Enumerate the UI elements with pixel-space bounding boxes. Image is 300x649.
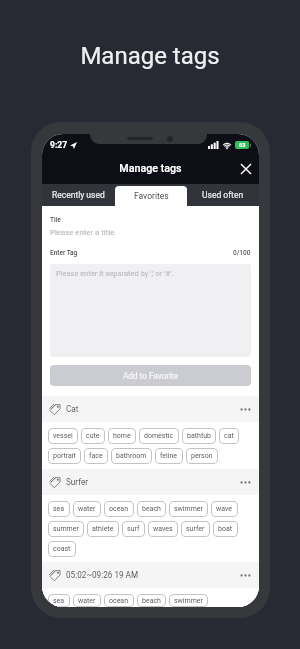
button[interactable]: ocean <box>104 594 134 607</box>
staticText: summer <box>53 525 79 533</box>
staticText: beach <box>142 505 161 513</box>
staticText: water <box>78 505 96 513</box>
button[interactable]: vessel <box>48 428 78 444</box>
button[interactable]: swimmer <box>169 594 208 607</box>
other: More options <box>239 476 252 489</box>
staticText: cat <box>224 432 234 440</box>
button[interactable]: surf <box>122 521 145 537</box>
button[interactable]: Please enter it separated by ',' or '#'. <box>50 264 251 357</box>
staticText: face <box>89 452 103 460</box>
button[interactable]: bathroom <box>111 448 152 464</box>
button[interactable]: Close <box>235 158 257 180</box>
staticText: cute <box>86 432 100 440</box>
staticText: water <box>78 597 96 605</box>
staticText: coast <box>53 545 71 553</box>
staticText: wave <box>216 505 233 513</box>
button[interactable]: beach <box>137 501 166 517</box>
staticText: sea <box>53 597 65 605</box>
staticText: Tile <box>50 216 61 224</box>
button[interactable]: Manage tags <box>42 153 259 184</box>
button[interactable]: summer <box>48 521 84 537</box>
button[interactable]: cat <box>219 428 239 444</box>
button[interactable]: domestic <box>139 428 179 444</box>
button[interactable]: feline <box>155 448 183 464</box>
staticText: Cat <box>66 404 79 414</box>
button[interactable]: face <box>84 448 108 464</box>
button[interactable]: Favorites <box>115 186 187 206</box>
staticText: ocean <box>109 505 129 513</box>
staticText: vessel <box>53 432 73 440</box>
button[interactable]: Surfer <box>42 469 259 495</box>
button[interactable]: sea <box>48 594 70 607</box>
button[interactable]: wave <box>211 501 238 517</box>
staticText: Enter Tag <box>50 249 78 257</box>
staticText: sea <box>53 505 65 513</box>
staticText: domestic <box>144 432 174 440</box>
button[interactable]: beach <box>137 594 166 607</box>
staticText: waves <box>153 525 173 533</box>
button[interactable]: coast <box>48 541 76 557</box>
button[interactable]: water <box>73 501 101 517</box>
staticText: bathtub <box>187 432 211 440</box>
button[interactable]: surfer <box>181 521 210 537</box>
button[interactable]: bathtub <box>182 428 216 444</box>
staticText: bathroom <box>116 452 147 460</box>
staticText: person <box>191 452 213 460</box>
staticText: boat <box>218 525 233 533</box>
button[interactable]: sea <box>48 501 70 517</box>
staticText: Surfer <box>66 477 89 487</box>
staticText: Recently used <box>52 190 105 200</box>
staticText: Favorites <box>134 191 169 201</box>
staticText: ocean <box>109 597 129 605</box>
button[interactable]: water <box>73 594 101 607</box>
button[interactable]: ocean <box>104 501 134 517</box>
button[interactable]: home <box>108 428 136 444</box>
staticText: Please enter a title. <box>50 228 117 237</box>
button[interactable]: person <box>186 448 218 464</box>
staticText: swimmer <box>174 505 203 513</box>
button[interactable]: Add to Favorite <box>50 365 251 386</box>
other: More options <box>239 403 252 416</box>
button[interactable]: boat <box>213 521 238 537</box>
button[interactable]: Cat <box>42 396 259 422</box>
staticText: portrait <box>53 452 76 460</box>
staticText: swimmer <box>174 597 203 605</box>
button[interactable]: portrait <box>48 448 81 464</box>
staticText: surf <box>127 525 140 533</box>
staticText: Manage tags <box>0 42 300 70</box>
staticText: Please enter it separated by ',' or '#'. <box>56 269 174 278</box>
staticText: Manage tags <box>119 162 182 175</box>
staticText: 0/100 <box>233 249 251 257</box>
button[interactable]: waves <box>148 521 178 537</box>
button[interactable]: swimmer <box>169 501 208 517</box>
button[interactable]: athlete <box>87 521 119 537</box>
staticText: 9:27 <box>50 140 68 150</box>
staticText: home <box>113 432 131 440</box>
staticText: 05:02~09:26 19 AM <box>66 570 139 580</box>
button[interactable]: 05:02~09:26 19 AM <box>42 562 259 588</box>
staticText: surfer <box>186 525 205 533</box>
staticText: Add to Favorite <box>123 371 179 381</box>
staticText: 63 <box>239 142 246 148</box>
other: More options <box>239 569 252 582</box>
button[interactable]: cute <box>81 428 105 444</box>
button[interactable]: Recently used <box>42 184 115 206</box>
staticText: Used often <box>202 190 244 200</box>
staticText: athlete <box>92 525 114 533</box>
staticText: feline <box>160 452 178 460</box>
button[interactable]: Used often <box>187 184 259 206</box>
staticText: beach <box>142 597 161 605</box>
